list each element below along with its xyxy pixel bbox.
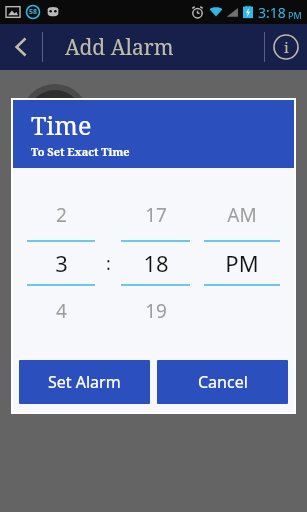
- staticText: 3: [55, 248, 68, 278]
- staticText: 19: [145, 298, 167, 324]
- staticText: 58: [29, 7, 38, 17]
- staticText: Cancel: [198, 371, 248, 393]
- staticText: Time: [31, 108, 92, 142]
- button[interactable]: 17: [121, 198, 190, 328]
- staticText: 3:18: [258, 3, 286, 22]
- button[interactable]: Back: [0, 24, 42, 70]
- staticText: 4: [56, 298, 67, 324]
- staticText: :: [106, 251, 111, 276]
- button[interactable]: Cancel: [157, 360, 288, 404]
- staticText: i: [284, 37, 289, 57]
- staticText: PM: [225, 248, 259, 278]
- staticText: 18: [143, 248, 169, 278]
- staticText: AM: [227, 202, 257, 228]
- button[interactable]: AM: [204, 198, 280, 328]
- staticText: Set Alarm: [48, 371, 121, 393]
- staticText: To Set Exact Time: [31, 144, 130, 159]
- button[interactable]: 2: [27, 198, 95, 328]
- staticText: 17: [145, 202, 167, 228]
- staticText: 2: [56, 202, 67, 228]
- staticText: Add Alarm: [65, 33, 174, 62]
- button[interactable]: Info: [265, 24, 307, 70]
- staticText: PM: [288, 9, 302, 21]
- button[interactable]: Set Alarm: [19, 360, 150, 404]
